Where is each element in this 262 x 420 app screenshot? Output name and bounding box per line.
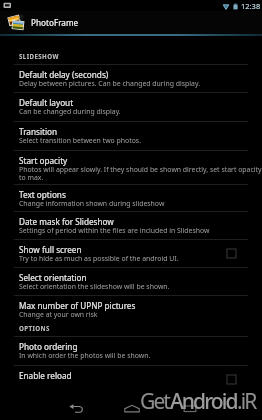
button[interactable]: Default layout [0,93,262,122]
button[interactable]: Back [60,399,92,417]
button[interactable]: Recent apps [174,399,206,417]
staticText: OPTIONS [19,324,50,332]
staticText: Start opacity [19,155,68,166]
staticText: Default delay (seconds) [19,69,109,80]
button[interactable]: Start opacity [0,151,262,185]
button[interactable]: Home [116,399,148,417]
staticText: Settings of period within the files are … [19,226,210,235]
staticText: Show full screen [19,244,82,255]
staticText: Enable reload [19,370,72,381]
button[interactable]: Max number of UPNP pictures [0,296,262,320]
button[interactable]: Transition [0,122,262,151]
button[interactable]: PhotoFrame [0,11,262,34]
staticText: SLIDESHOW [19,52,59,60]
staticText: Text options [19,189,66,200]
staticText: Delay between pictures. Can be changed d… [19,79,201,88]
button[interactable]: Enable reload [0,366,262,386]
staticText: Select transition between two photos. [19,136,141,145]
button[interactable]: Photo ordering [0,337,262,366]
staticText: Can be changed during display. [19,107,121,116]
staticText: Photo ordering [19,341,78,352]
staticText: 12:38 [241,1,261,11]
staticText: Select orientation the slideshow will be… [19,282,170,291]
staticText: Get [140,387,170,416]
staticText: Transition [19,126,58,137]
button[interactable]: Show full screen [0,240,262,268]
staticText: Change information shown during slidesho… [19,199,165,208]
button[interactable]: Select orientation [0,268,262,296]
staticText: Change at your own risk [19,310,98,319]
button[interactable]: Date mask for Slideshow [0,212,262,240]
staticText: Photos will appear slowly. If they shoul… [19,165,262,182]
staticText: Try to hide as much as possible of the a… [19,254,179,263]
staticText: Android [170,387,237,416]
staticText: Date mask for Slideshow [19,216,114,227]
staticText: PhotoFrame [31,17,79,28]
button[interactable]: Default delay (seconds) [0,65,262,93]
staticText: Select orientation [19,272,87,283]
staticText: .iR [237,387,256,416]
staticText: Max number of UPNP pictures [19,300,136,311]
staticText: Default layout [19,97,74,108]
staticText: In which order the photos will be shown. [19,351,151,360]
button[interactable]: Text options [0,185,262,212]
